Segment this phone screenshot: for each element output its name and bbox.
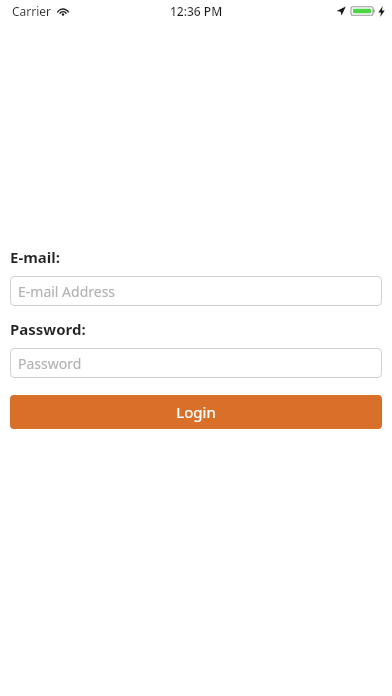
- staticText: E-mail:: [10, 247, 60, 267]
- staticText: 12:36 PM: [170, 3, 223, 19]
- button[interactable]: E-mail Address: [10, 276, 382, 306]
- button[interactable]: Password: [10, 348, 382, 378]
- staticText: Carrier: [12, 3, 52, 19]
- staticText: Password: [18, 354, 82, 373]
- staticText: E-mail Address: [18, 282, 116, 301]
- staticText: Password:: [10, 319, 86, 339]
- staticText: Login: [176, 402, 216, 422]
- button[interactable]: Login: [10, 395, 382, 429]
